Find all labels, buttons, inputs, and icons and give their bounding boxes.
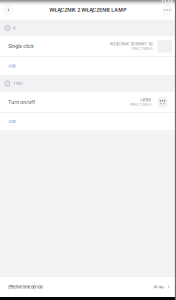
staticText: PRACOWNIA bbox=[130, 103, 151, 107]
staticText: IF bbox=[13, 26, 16, 30]
staticText: WŁĄCZNIK ŚCIENNY 02 bbox=[110, 42, 153, 46]
staticText: Add bbox=[8, 64, 15, 68]
staticText: Single click bbox=[8, 43, 34, 49]
staticText: Effective time period bbox=[8, 285, 42, 289]
button[interactable]: Back bbox=[2, 3, 15, 16]
staticText: Turn on/off bbox=[8, 99, 35, 105]
staticText: WŁĄCZNIK 2 WŁĄCZENIE LAMP bbox=[49, 7, 126, 13]
staticText: All day bbox=[153, 285, 164, 289]
staticText: Lampy bbox=[140, 98, 151, 102]
button[interactable]: Single click bbox=[0, 36, 176, 56]
staticText: PRACOWNIA bbox=[132, 47, 153, 51]
button[interactable]: Effective time period bbox=[0, 277, 176, 297]
button[interactable]: More options bbox=[161, 3, 174, 16]
staticText: Then bbox=[13, 81, 22, 86]
button[interactable]: Add bbox=[0, 57, 176, 75]
button[interactable]: Add bbox=[0, 113, 176, 130]
button[interactable]: Turn on/off bbox=[0, 92, 176, 112]
staticText: 13:06 bbox=[161, 0, 173, 5]
staticText: Add bbox=[8, 119, 15, 124]
